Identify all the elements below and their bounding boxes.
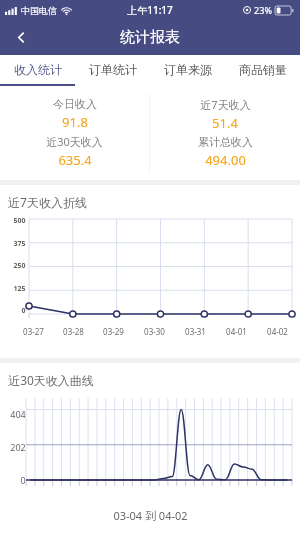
staticText: 04-01 — [226, 326, 247, 337]
staticText: 500 — [13, 216, 26, 226]
staticText: 收入统计 — [14, 62, 62, 77]
staticText: 统计报表 — [120, 28, 180, 47]
staticText: 累计总收入 — [198, 135, 253, 149]
staticText: 0 — [20, 474, 26, 486]
staticText: 近30天收入 — [46, 134, 103, 149]
staticText: 91.8 — [62, 113, 88, 131]
staticText: 上午11:17 — [127, 3, 173, 17]
staticText: 03-31 — [185, 326, 206, 337]
staticText: 订单统计 — [89, 62, 137, 77]
button[interactable]: 返回 — [0, 20, 42, 55]
staticText: 125 — [13, 284, 26, 294]
staticText: 04-02 — [267, 326, 288, 337]
staticText: 404 — [10, 408, 26, 420]
staticText: 订单来源 — [164, 62, 212, 77]
staticText: 375 — [13, 239, 26, 249]
staticText: 近7天收入折线 — [8, 194, 87, 210]
staticText: 0 — [21, 306, 26, 316]
staticText: 202 — [10, 441, 26, 453]
staticText: 03-04 到 04-02 — [113, 508, 188, 523]
staticText: 23% — [254, 4, 272, 16]
button[interactable]: 订单统计 — [75, 55, 150, 84]
staticText: 中国电信 — [21, 5, 57, 16]
staticText: 近7天收入 — [200, 97, 251, 112]
staticText: 494.00 — [205, 151, 246, 169]
staticText: 近30天收入曲线 — [8, 372, 94, 388]
staticText: 03-27 — [23, 326, 44, 337]
button[interactable]: 商品销量 — [225, 55, 300, 84]
staticText: 250 — [13, 261, 26, 271]
staticText: 03-29 — [103, 326, 124, 337]
staticText: 635.4 — [58, 151, 92, 169]
staticText: 51.4 — [212, 114, 238, 132]
staticText: 03-28 — [63, 326, 84, 337]
button[interactable]: 订单来源 — [150, 55, 225, 84]
staticText: 03-30 — [144, 326, 165, 337]
staticText: 今日收入 — [53, 97, 97, 111]
staticText: 商品销量 — [239, 62, 287, 77]
button[interactable]: 收入统计 — [0, 55, 75, 84]
